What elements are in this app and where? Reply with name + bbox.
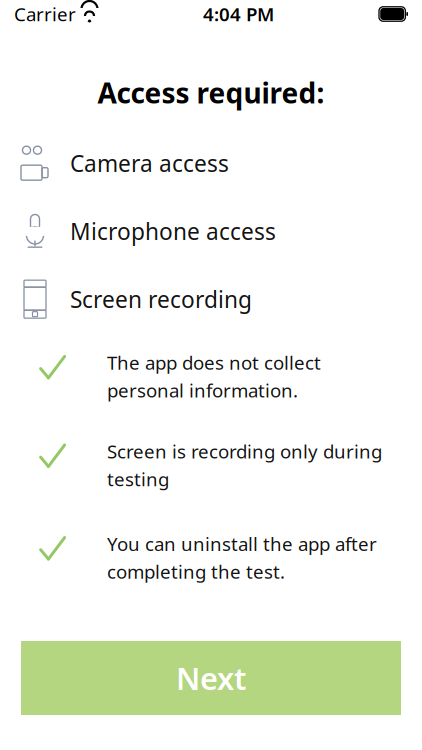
- staticText: You can uninstall the app after completi…: [107, 531, 377, 584]
- staticText: Camera access: [70, 148, 229, 178]
- staticText: Access required:: [97, 74, 324, 111]
- staticText: Next: [176, 658, 246, 698]
- staticText: 4:04 PM: [203, 2, 274, 26]
- staticText: The app does not collect personal inform…: [107, 350, 321, 403]
- staticText: Microphone access: [70, 216, 276, 246]
- staticText: Screen is recording only during testing: [107, 439, 382, 491]
- staticText: Screen recording: [70, 284, 252, 314]
- staticText: Carrier: [14, 2, 76, 26]
- button[interactable]: Next: [21, 641, 401, 715]
